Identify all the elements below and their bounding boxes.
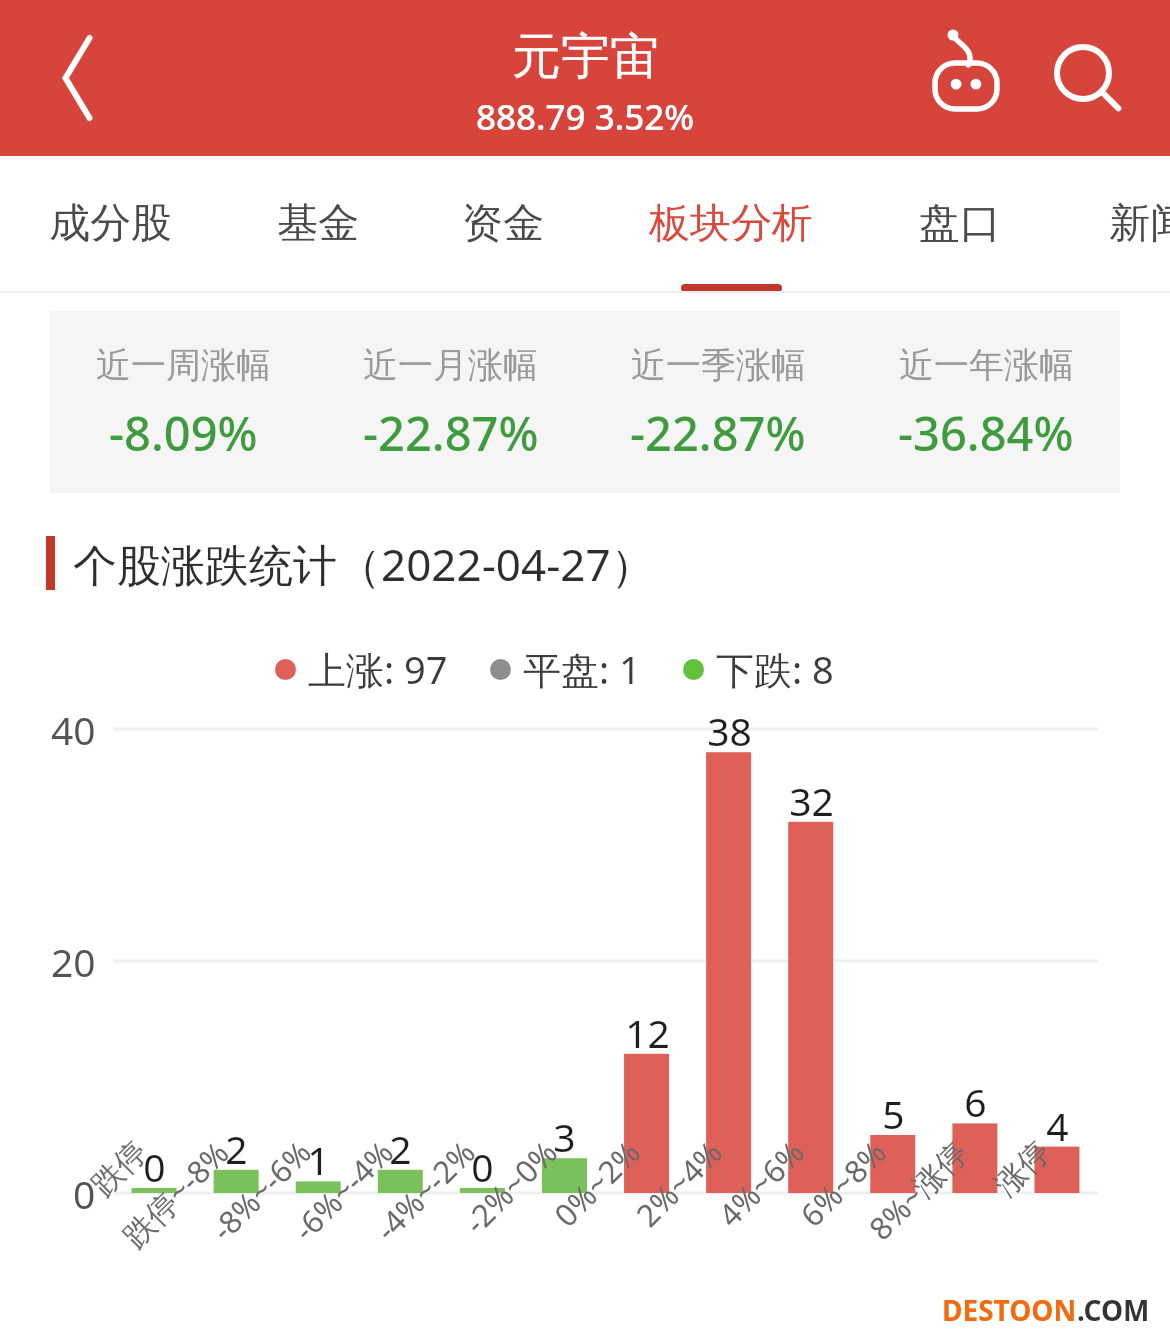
staticText: 6 — [964, 1075, 987, 1128]
staticText: 8%~涨停 — [859, 1131, 977, 1249]
staticText: -22.87% — [363, 401, 539, 465]
button[interactable]: AI assistant — [918, 30, 1014, 126]
staticText: 12 — [625, 1006, 670, 1059]
button[interactable]: 板块分析 — [626, 160, 836, 290]
staticText: 20 — [51, 935, 96, 988]
staticText: 40 — [51, 703, 96, 756]
staticText: 涨停 — [987, 1133, 1058, 1204]
staticText: 新闻 — [1109, 198, 1170, 250]
staticText: 0 — [73, 1167, 96, 1220]
staticText: 4%~6% — [709, 1131, 813, 1235]
staticText: 跌停~-8% — [113, 1131, 238, 1256]
staticText: 上涨: 97 — [308, 643, 448, 695]
staticText: 下跌: 8 — [716, 643, 834, 695]
staticText: 4 — [1046, 1099, 1069, 1152]
staticText: 个股涨跌统计（2022-04-27） — [73, 534, 655, 592]
staticText: 888.79 3.52% — [476, 93, 695, 141]
staticText: 基金 — [277, 198, 359, 250]
staticText: 0%~2% — [545, 1131, 649, 1235]
staticText: -22.87% — [630, 401, 806, 465]
button[interactable]: 盘口 — [855, 160, 1065, 290]
staticText: 资金 — [462, 198, 544, 250]
button[interactable]: Search — [1040, 30, 1136, 126]
staticText: 2%~4% — [627, 1131, 731, 1235]
staticText: 0 — [143, 1140, 166, 1193]
staticText: -6%~-4% — [284, 1131, 402, 1249]
staticText: 近一季涨幅 — [631, 343, 806, 387]
staticText: 5 — [882, 1087, 905, 1140]
staticText: .COM — [1077, 1291, 1150, 1329]
button[interactable]: Back — [28, 33, 118, 123]
staticText: 盘口 — [919, 198, 1001, 250]
staticText: 平盘: 1 — [523, 643, 641, 695]
button[interactable]: 成分股 — [5, 160, 215, 290]
staticText: 近一年涨幅 — [899, 343, 1074, 387]
staticText: -8%~-6% — [202, 1131, 320, 1249]
staticText: -36.84% — [898, 401, 1074, 465]
staticText: -8.09% — [109, 401, 258, 465]
button[interactable]: 新闻 — [1045, 160, 1170, 290]
staticText: -2%~0% — [455, 1131, 566, 1242]
staticText: 跌停 — [84, 1133, 155, 1204]
staticText: 板块分析 — [649, 198, 813, 250]
staticText: DESTOON — [942, 1291, 1077, 1329]
staticText: 1 — [307, 1133, 330, 1186]
staticText: 6%~8% — [791, 1131, 895, 1235]
staticText: 近一周涨幅 — [96, 343, 271, 387]
staticText: 近一月涨幅 — [363, 343, 538, 387]
staticText: 3 — [553, 1110, 576, 1163]
staticText: 32 — [789, 774, 834, 827]
staticText: 0 — [471, 1140, 494, 1193]
staticText: 元宇宙 — [512, 26, 659, 88]
staticText: 2 — [389, 1122, 412, 1175]
staticText: 2 — [225, 1122, 248, 1175]
staticText: 成分股 — [49, 198, 172, 250]
button[interactable]: 基金 — [213, 160, 423, 290]
staticText: -4%~-2% — [366, 1131, 484, 1249]
staticText: 38 — [707, 704, 752, 757]
button[interactable]: 资金 — [398, 160, 608, 290]
